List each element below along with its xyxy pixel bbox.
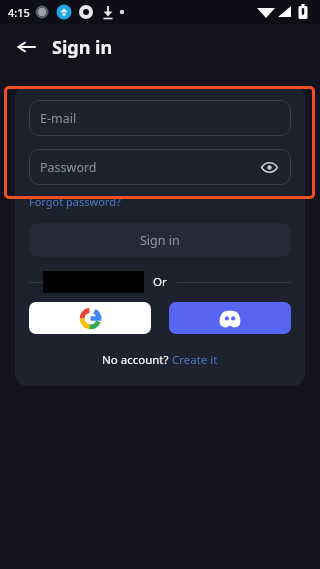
button[interactable]: Show password (258, 156, 280, 178)
staticText: E-mail (40, 110, 77, 127)
button[interactable]: Password (29, 149, 291, 185)
staticText: 4:15 (8, 5, 30, 20)
staticText: Password (40, 159, 97, 176)
staticText: Or (153, 274, 167, 290)
button[interactable]: Sign in (29, 223, 291, 257)
button[interactable]: Sign in with Google (29, 302, 151, 334)
button[interactable]: Forgot password? (29, 194, 121, 209)
staticText: No account? (102, 352, 172, 368)
button[interactable]: Sign in with Discord (169, 302, 291, 334)
staticText: Sign in (52, 35, 113, 60)
button[interactable]: E-mail (29, 100, 291, 136)
button[interactable]: Create it (172, 352, 218, 368)
staticText: Sign in (140, 232, 180, 249)
button[interactable]: Back (8, 29, 44, 65)
